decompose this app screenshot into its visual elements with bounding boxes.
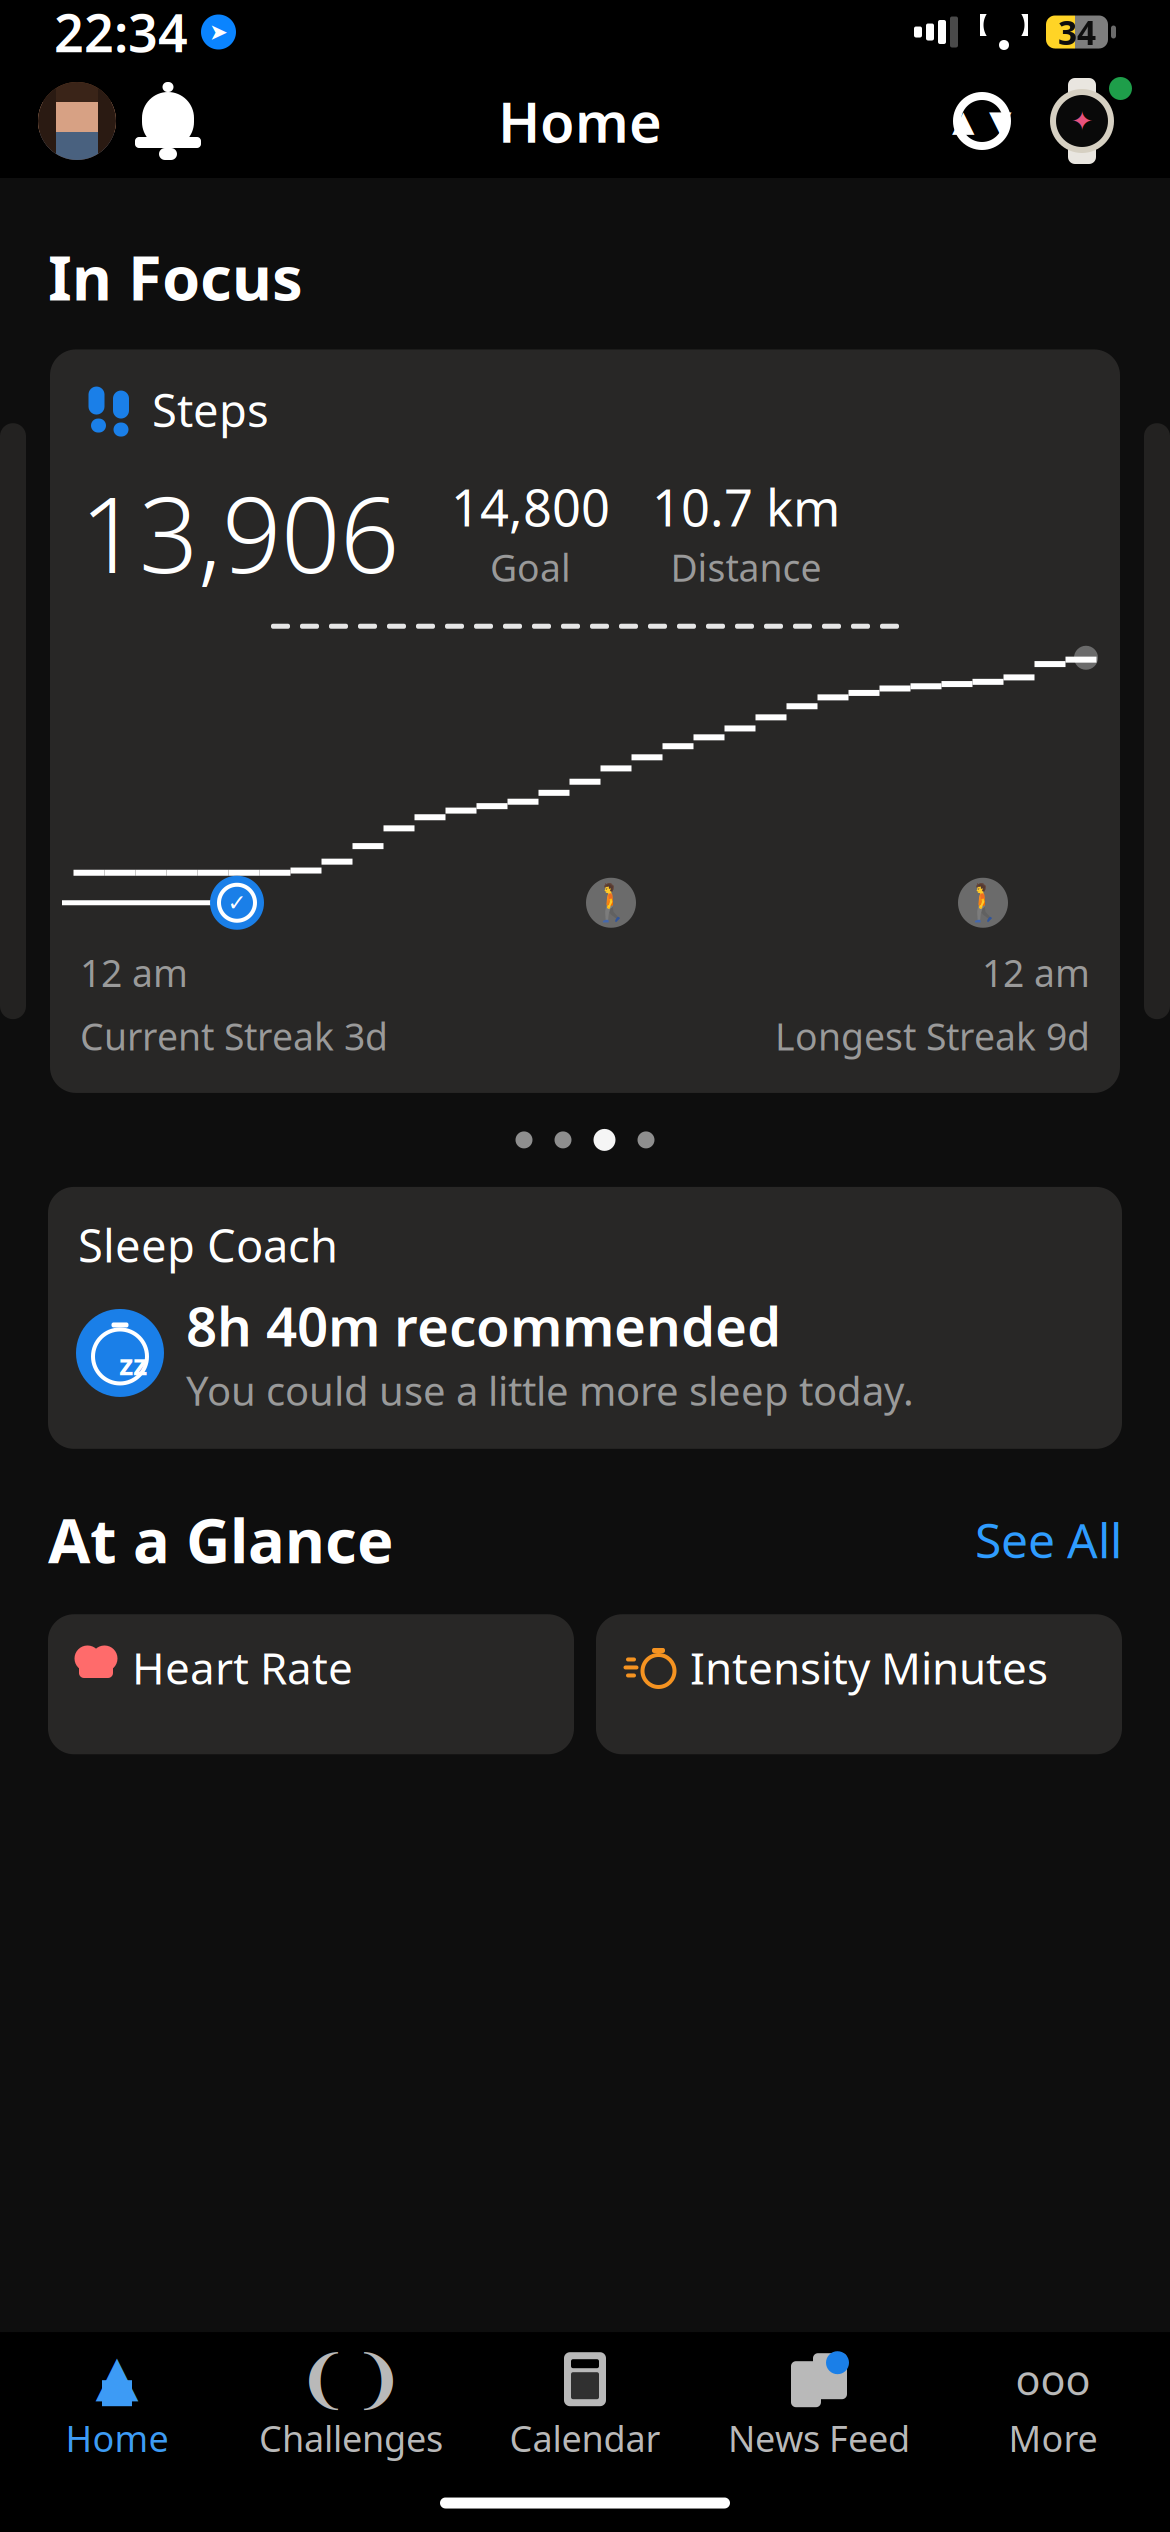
staticText: Sleep Coach [78,1215,338,1275]
staticText: 12 am [982,948,1090,997]
staticText: Steps [152,379,269,440]
staticText: 🚶 [960,882,1005,923]
staticText: At a Glance [48,1499,394,1580]
staticText: ▲ [95,2343,138,2407]
staticText: 13,906 [80,464,399,602]
staticText: ❨ [296,2343,350,2415]
staticText: 8h 40m recommended [186,1289,781,1362]
button[interactable]: Sync [940,78,1024,164]
staticText: You could use a little more sleep today. [186,1364,914,1417]
staticText: 14,800 [451,473,610,541]
button[interactable]: ❨ [234,2332,468,2474]
button[interactable]: Steps [50,349,1120,1093]
staticText: Intensity Minutes [690,1638,1048,1697]
staticText: 10.7 km [652,473,840,541]
button[interactable]: Profile [38,82,116,160]
staticText: In Focus [48,236,303,317]
staticText: Home [498,84,662,158]
button[interactable]: Notifications [116,78,220,164]
staticText: Challenges [259,2414,443,2462]
staticText: ➤ [209,19,228,45]
staticText: ✦ [1071,106,1093,136]
staticText: News Feed [728,2414,910,2462]
staticText: ▲ [952,104,975,138]
staticText: 22:34 [54,0,188,67]
staticText: 12 am [80,948,188,997]
staticText: ▼ [989,104,1012,138]
staticText: ooo [1015,2352,1090,2407]
staticText: Heart Rate [132,1638,353,1697]
staticText: Current Streak 3d [80,1011,388,1061]
staticText: Goal [490,543,571,592]
button[interactable]: My Watch [1032,75,1132,167]
staticText: zz [119,1344,147,1383]
staticText: Longest Streak 9d [775,1011,1090,1061]
button[interactable]: Heart Rate [48,1614,574,1754]
staticText: Home [65,2414,168,2462]
staticText: ❩ [351,2343,405,2415]
staticText: Calendar [509,2414,660,2462]
staticText: More [1008,2414,1097,2462]
staticText: 🚶 [588,882,633,923]
button[interactable]: Intensity Minutes [596,1614,1122,1754]
button[interactable]: ▲ [0,2332,234,2474]
button[interactable]: See All [975,1508,1122,1571]
staticText: 34 [1058,10,1096,54]
button[interactable]: News Feed [702,2332,936,2474]
staticText: See All [975,1508,1122,1571]
staticText: ✓ [227,890,246,916]
staticText: Distance [670,543,821,592]
button[interactable]: Calendar [468,2332,702,2474]
button[interactable]: ooo [936,2332,1170,2474]
button[interactable]: Sleep Coach [48,1187,1122,1449]
